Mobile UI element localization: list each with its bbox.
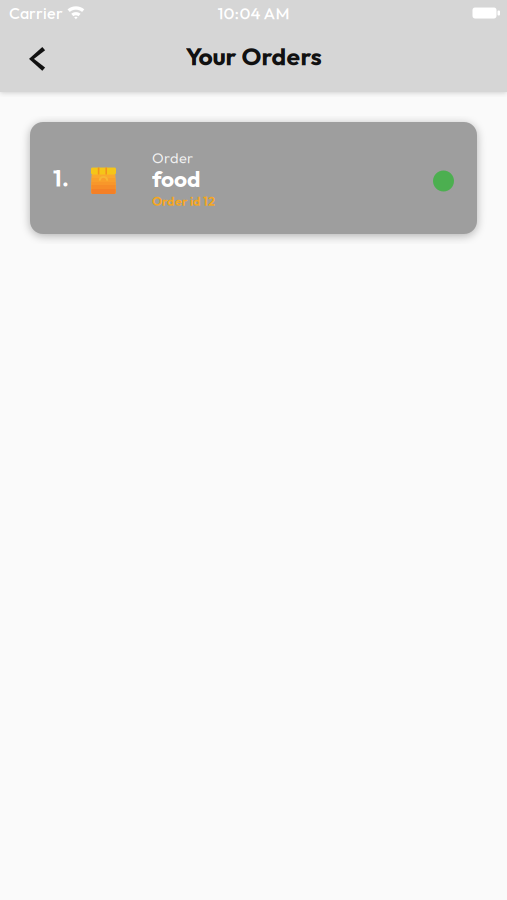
staticText: 10:04 AM — [217, 2, 289, 23]
staticText: Order id 12 — [152, 193, 215, 209]
staticText: 1. — [53, 164, 69, 192]
staticText: Carrier — [9, 3, 63, 23]
staticText: Order — [152, 148, 193, 167]
staticText: food — [152, 164, 200, 193]
button[interactable]: Back — [14, 36, 60, 82]
staticText: Your Orders — [185, 40, 321, 72]
button[interactable]: 1. — [30, 122, 477, 234]
